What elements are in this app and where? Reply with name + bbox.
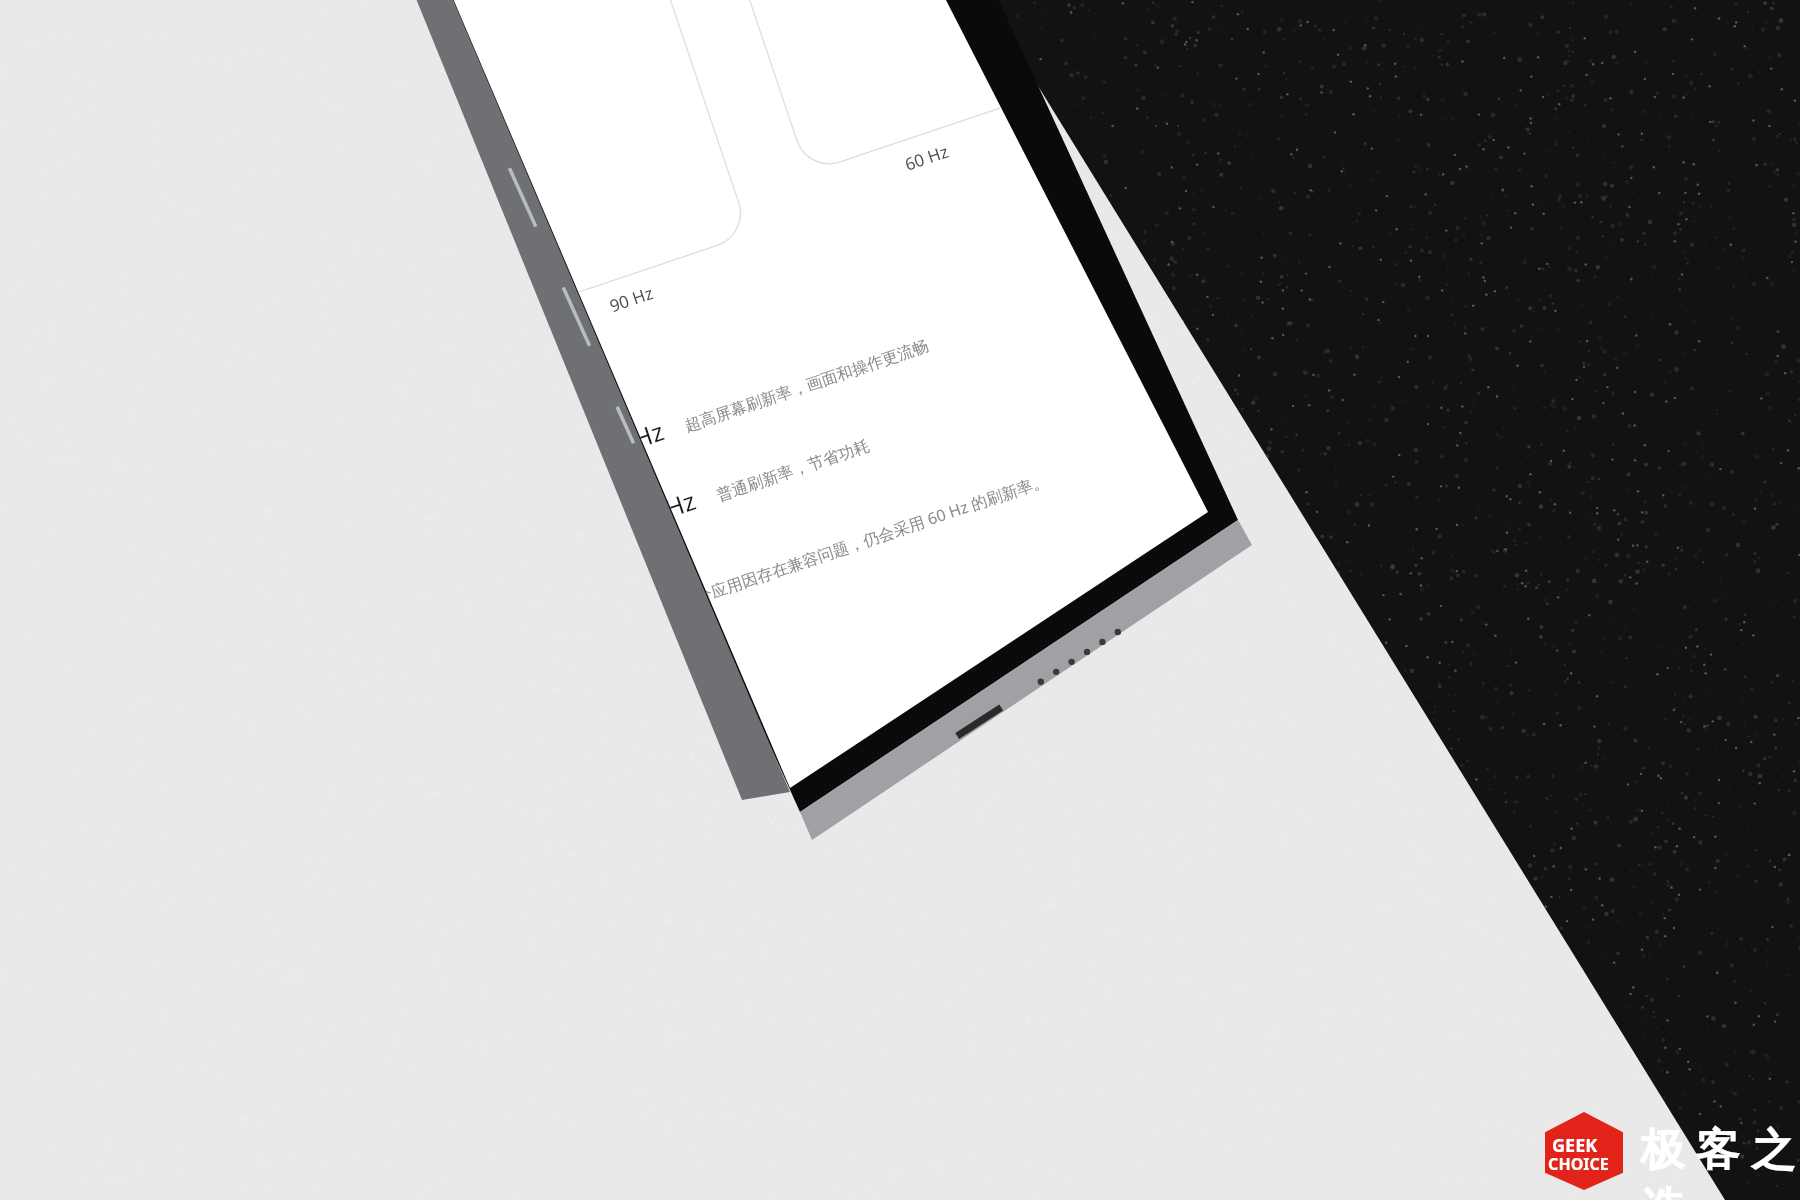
button[interactable]: Refresh rate settings photo — [0, 0, 1800, 1200]
